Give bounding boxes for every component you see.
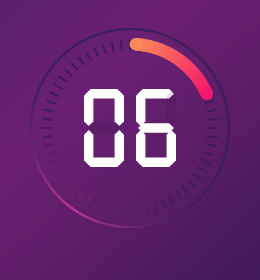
button[interactable]: Countdown timer, 06 remaining	[0, 0, 260, 280]
